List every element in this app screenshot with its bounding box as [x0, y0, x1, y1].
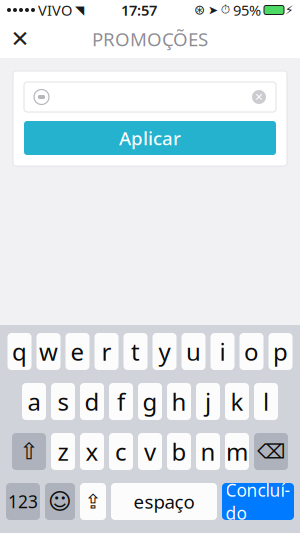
staticText: l [263, 386, 269, 417]
staticText: Concluído [225, 478, 290, 524]
staticText: ⚡︎ [285, 3, 293, 17]
button[interactable]: j [196, 383, 220, 420]
button[interactable]: Concluído [222, 483, 294, 520]
staticText: y [158, 336, 170, 367]
button[interactable]: h [167, 383, 191, 420]
staticText: h [171, 386, 186, 417]
staticText: q [12, 336, 27, 367]
staticText: s [57, 386, 68, 417]
staticText: ✕ [254, 91, 263, 103]
staticText: t [131, 336, 140, 367]
button[interactable]: v [138, 433, 162, 470]
button[interactable]: u [181, 333, 205, 370]
button[interactable]: ⇪ [80, 483, 106, 520]
button[interactable]: e [65, 333, 89, 370]
staticText: Aplicar [119, 126, 181, 150]
button[interactable]: i [210, 333, 234, 370]
staticText: espaço [133, 489, 194, 514]
button[interactable]: ⌫ [254, 433, 288, 470]
staticText: a [27, 386, 40, 417]
button[interactable]: d [80, 383, 104, 420]
staticText: ⌫ [257, 440, 285, 463]
staticText: c [115, 436, 127, 467]
button[interactable]: a [22, 383, 46, 420]
button[interactable]: ⇧ [12, 433, 46, 470]
button[interactable]: Fechar [0, 20, 40, 58]
staticText: w [39, 336, 58, 367]
button[interactable]: ☺ [45, 483, 75, 520]
button[interactable]: x [80, 433, 104, 470]
staticText: 17:57 [121, 0, 157, 20]
staticText: ☺ [48, 489, 72, 514]
staticText: i [219, 336, 225, 367]
button[interactable]: Aplicar [24, 121, 276, 155]
button[interactable]: n [196, 433, 220, 470]
button[interactable]: f [109, 383, 133, 420]
button[interactable]: g [138, 383, 162, 420]
staticText: g [142, 386, 157, 417]
button[interactable]: r [94, 333, 118, 370]
staticText: k [230, 386, 243, 417]
button[interactable]: espaço [111, 483, 217, 520]
staticText: r [101, 336, 111, 367]
button[interactable]: z [51, 433, 75, 470]
button[interactable]: y [152, 333, 176, 370]
staticText: o [244, 336, 259, 367]
staticText: 123 [8, 490, 38, 513]
button[interactable]: 123 [6, 483, 40, 520]
staticText: ➤ [208, 3, 218, 17]
staticText: m [226, 436, 248, 467]
staticText: d [84, 386, 99, 417]
button[interactable]: b [167, 433, 191, 470]
staticText: b [171, 436, 186, 467]
button[interactable]: s [51, 383, 75, 420]
button[interactable]: k [225, 383, 249, 420]
staticText: PROMOÇÕES [92, 27, 208, 51]
staticText: ◥ [75, 3, 84, 17]
staticText: j [205, 386, 211, 417]
staticText: ⊛ [194, 2, 205, 17]
staticText: f [117, 386, 125, 417]
staticText: e [70, 336, 84, 367]
staticText: 95% [233, 0, 261, 20]
staticText: ✕ [10, 26, 29, 52]
staticText: x [85, 436, 98, 467]
button[interactable]: o [239, 333, 263, 370]
button[interactable]: Limpar texto [246, 84, 272, 110]
staticText: z [57, 436, 68, 467]
staticText: ⇧ [19, 439, 38, 464]
button[interactable]: p [268, 333, 292, 370]
button[interactable]: w [36, 333, 60, 370]
staticText: ⏱ [221, 4, 230, 16]
staticText: ⇪ [84, 490, 101, 513]
button[interactable]: t [123, 333, 147, 370]
staticText: u [186, 336, 201, 367]
button[interactable]: c [109, 433, 133, 470]
staticText: p [273, 336, 288, 367]
staticText: VIVO [38, 0, 72, 20]
button[interactable]: q [7, 333, 31, 370]
staticText: v [144, 436, 156, 467]
button[interactable]: m [225, 433, 249, 470]
staticText: n [200, 436, 215, 467]
button[interactable]: l [254, 383, 278, 420]
